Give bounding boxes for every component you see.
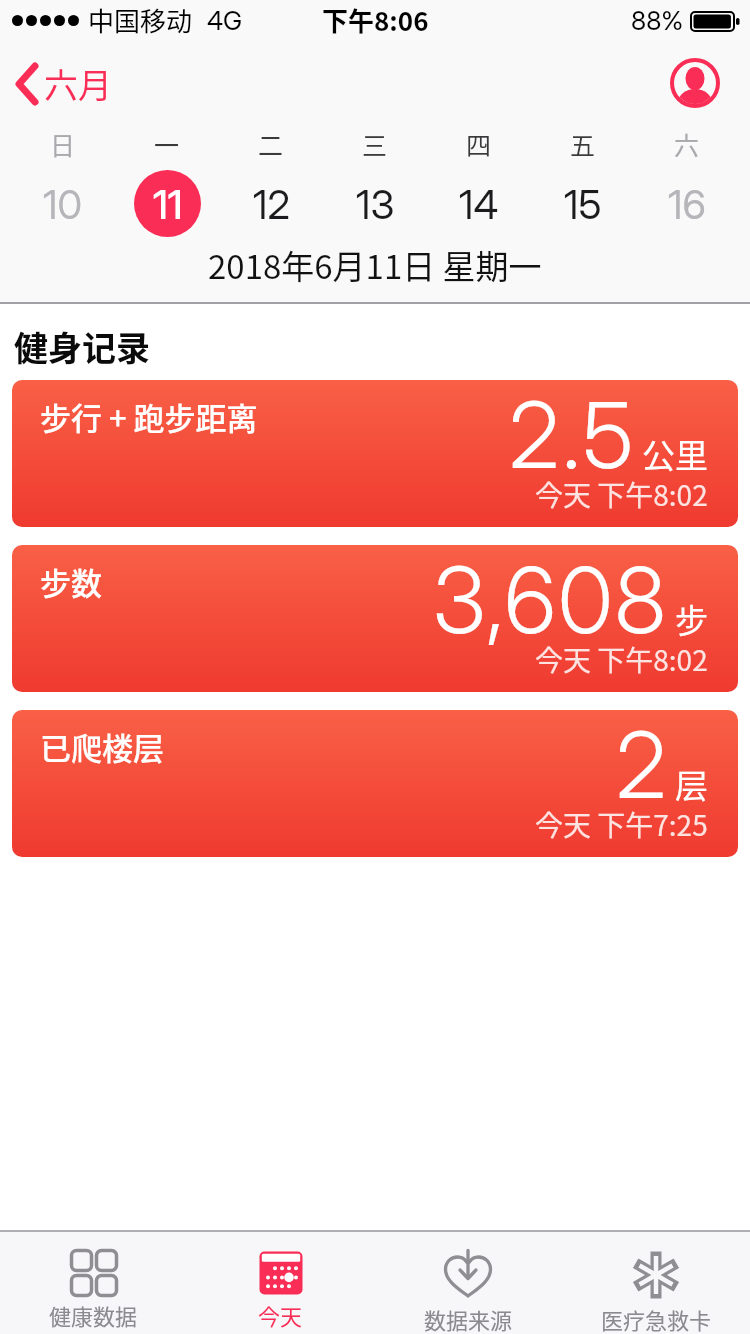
- button[interactable]: [670, 58, 720, 108]
- button[interactable]: 医疗急救卡: [562, 1232, 750, 1334]
- staticText: 今天 下午8:02: [535, 474, 708, 515]
- button[interactable]: 数据来源: [374, 1232, 562, 1334]
- staticText: 六: [674, 126, 700, 158]
- staticText: 4G: [207, 5, 243, 36]
- staticText: 二: [258, 126, 284, 158]
- staticText: 一: [154, 126, 180, 158]
- staticText: 下午8:06: [322, 1, 429, 39]
- button[interactable]: 11: [115, 170, 219, 237]
- staticText: 今天: [258, 1299, 303, 1331]
- staticText: 层: [675, 760, 708, 808]
- button[interactable]: 10: [11, 170, 115, 237]
- staticText: 步: [675, 595, 708, 643]
- button[interactable]: 13: [323, 170, 427, 237]
- staticText: 3,608: [433, 545, 669, 655]
- staticText: 健康数据: [49, 1299, 138, 1331]
- staticText: 13: [356, 180, 395, 228]
- staticText: 今天 下午8:02: [535, 639, 708, 680]
- staticText: 数据来源: [424, 1303, 513, 1334]
- button[interactable]: 12: [219, 170, 323, 237]
- staticText: 16: [668, 180, 706, 228]
- button[interactable]: 已爬楼层: [12, 710, 738, 857]
- button[interactable]: 今天: [187, 1232, 374, 1334]
- staticText: 步数: [40, 559, 102, 604]
- staticText: 步行 + 跑步距离: [40, 394, 258, 439]
- button[interactable]: 健康数据: [0, 1232, 187, 1334]
- staticText: 2018年6月11日 星期一: [208, 241, 542, 289]
- staticText: 14: [459, 180, 499, 228]
- staticText: 15: [564, 180, 602, 228]
- staticText: 五: [570, 126, 596, 158]
- button[interactable]: 六月: [14, 59, 112, 108]
- staticText: 88%: [631, 5, 684, 36]
- staticText: 中国移动: [88, 1, 193, 39]
- button[interactable]: 步行 + 跑步距离: [12, 380, 738, 527]
- staticText: 11: [153, 180, 183, 228]
- staticText: 2: [616, 710, 669, 820]
- button[interactable]: 16: [635, 170, 739, 237]
- staticText: 2.5: [509, 380, 636, 490]
- staticText: 四: [466, 126, 492, 158]
- staticText: 10: [43, 180, 83, 228]
- staticText: 健身记录: [14, 322, 150, 371]
- staticText: 日: [50, 126, 76, 158]
- staticText: 三: [362, 126, 388, 158]
- button[interactable]: 14: [427, 170, 531, 237]
- button[interactable]: 15: [531, 170, 635, 237]
- staticText: 12: [253, 180, 290, 228]
- staticText: 公里: [642, 430, 708, 478]
- staticText: 六月: [44, 59, 112, 108]
- staticText: 今天 下午7:25: [535, 804, 708, 845]
- staticText: 已爬楼层: [40, 724, 164, 769]
- staticText: 医疗急救卡: [601, 1303, 712, 1334]
- button[interactable]: 步数: [12, 545, 738, 692]
